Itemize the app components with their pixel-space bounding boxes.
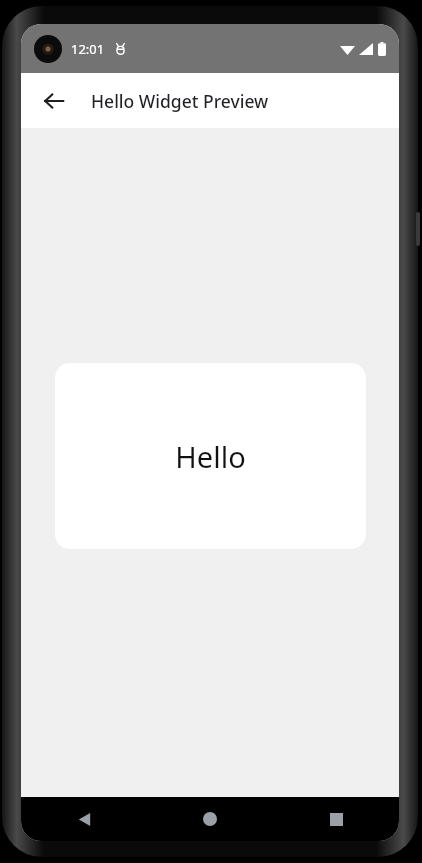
staticText: Hello — [175, 437, 246, 476]
button[interactable]: Recent apps — [273, 797, 399, 841]
button[interactable]: Back — [21, 797, 147, 841]
staticText: 12:01 — [71, 40, 105, 58]
staticText: Hello Widget Preview — [91, 89, 269, 113]
button[interactable]: Hello — [55, 363, 366, 549]
button[interactable]: Home — [147, 797, 273, 841]
button[interactable]: Back — [32, 79, 76, 123]
